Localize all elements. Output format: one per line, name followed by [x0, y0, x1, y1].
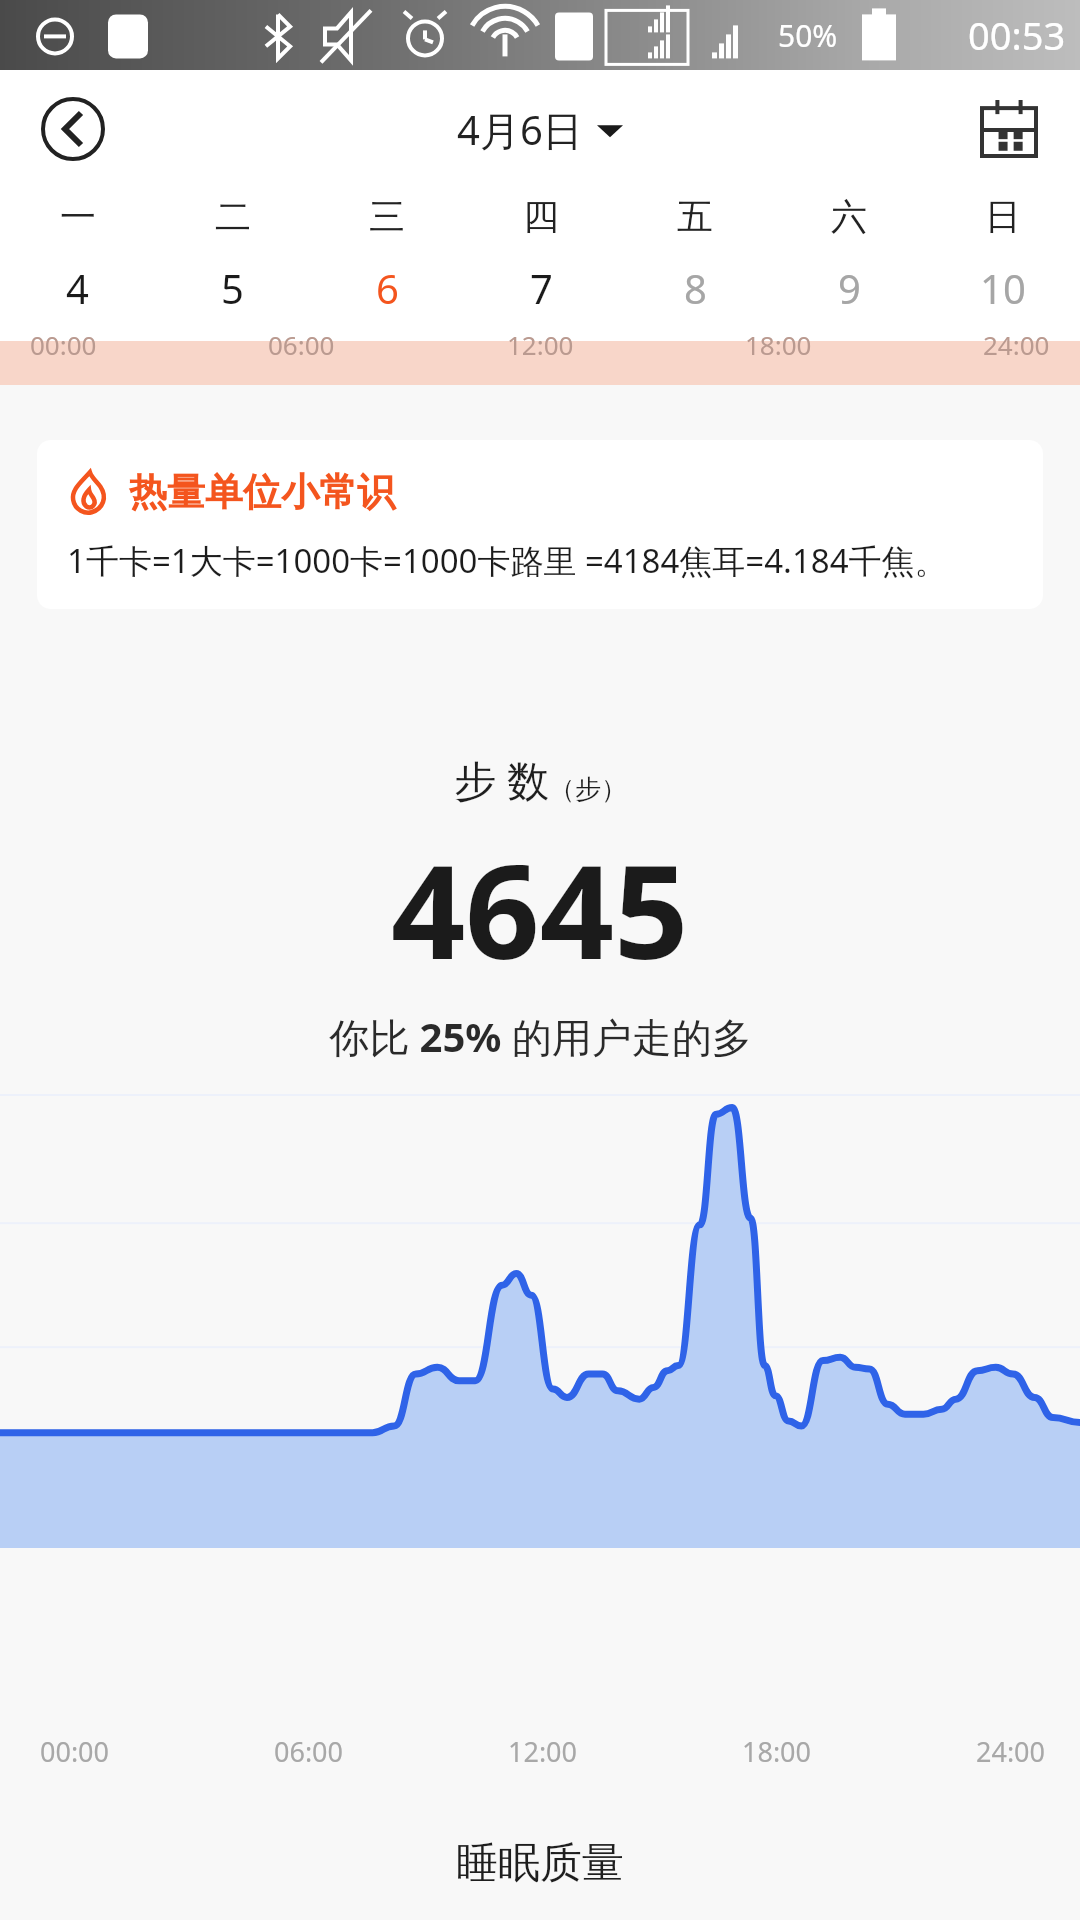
staticText: 00:00 [30, 327, 97, 362]
staticText: 你比 25% 的用户走的多 [329, 1009, 752, 1064]
staticText: 1千卡=1大卡=1000卡=1000卡路里 =4184焦耳=4.184千焦。 [67, 538, 948, 583]
staticText: 00:00 [40, 1733, 110, 1770]
staticText: 5 [221, 261, 244, 315]
staticText: 睡眠质量 [456, 1837, 624, 1890]
staticText: 步 数 [454, 751, 549, 808]
staticText: 24:00 [976, 1733, 1046, 1770]
staticText: 三 [369, 194, 405, 239]
button[interactable]: 热量单位小常识 [37, 440, 1043, 609]
staticText: 24:00 [983, 327, 1050, 362]
staticText: 8 [684, 261, 707, 315]
staticText: 五 [677, 194, 713, 239]
staticText: 9 [838, 261, 861, 315]
button[interactable]: 4月6日 [457, 102, 623, 157]
staticText: 7 [530, 261, 553, 315]
staticText: 6 [376, 261, 399, 315]
staticText: 二 [215, 194, 251, 239]
staticText: 10 [980, 261, 1026, 315]
button[interactable]: 9 [772, 261, 926, 315]
staticText: 热量单位小常识 [129, 468, 395, 516]
staticText: 一 [60, 194, 96, 239]
staticText: 06:00 [274, 1733, 344, 1770]
staticText: 50% [778, 15, 838, 56]
staticText: 4月6日 [457, 102, 583, 157]
staticText: 四 [523, 194, 559, 239]
staticText: （步） [549, 773, 627, 806]
staticText: 18:00 [745, 327, 812, 362]
button[interactable]: 7 [464, 261, 618, 315]
button[interactable]: 6 [310, 261, 464, 315]
staticText: 00:53 [968, 9, 1066, 61]
button[interactable]: 4 [0, 261, 155, 315]
staticText: 4 [66, 261, 89, 315]
button[interactable]: 10 [926, 261, 1080, 315]
staticText: 4645 [391, 820, 689, 997]
staticText: 12:00 [507, 327, 574, 362]
staticText: 12:00 [508, 1733, 578, 1770]
button[interactable]: Calendar [980, 100, 1038, 158]
button[interactable]: 8 [618, 261, 772, 315]
staticText: 06:00 [268, 327, 335, 362]
staticText: 18:00 [742, 1733, 812, 1770]
button[interactable]: Back [41, 97, 105, 161]
button[interactable]: 5 [155, 261, 310, 315]
staticText: 六 [831, 194, 867, 239]
staticText: 日 [985, 194, 1021, 239]
